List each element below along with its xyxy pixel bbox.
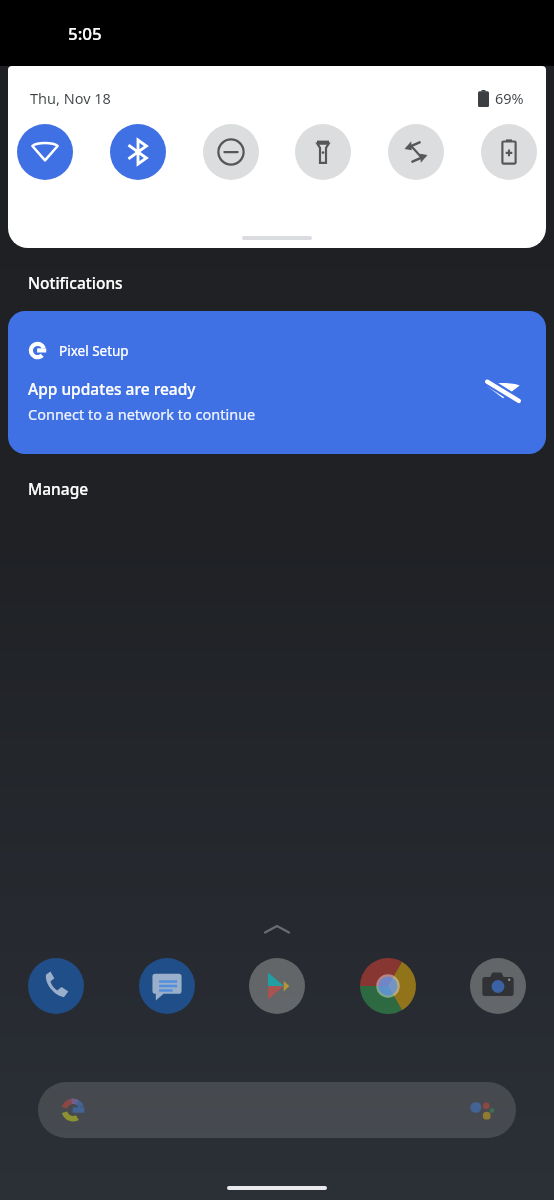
staticText: 69%: [495, 88, 524, 108]
button[interactable]: Manage: [28, 478, 89, 499]
button[interactable]: Camera: [470, 958, 526, 1014]
button[interactable]: Auto rotate: [388, 124, 444, 180]
button[interactable]: Wi-Fi: [17, 124, 73, 180]
staticText: Pixel Setup: [59, 342, 129, 360]
button[interactable]: Play Store: [249, 958, 305, 1014]
button[interactable]: Battery Saver: [481, 124, 537, 180]
staticText: 5:05: [68, 22, 102, 45]
button[interactable]: Bluetooth: [110, 124, 166, 180]
staticText: App updates are ready: [28, 378, 196, 399]
button[interactable]: Phone: [28, 958, 84, 1014]
staticText: Connect to a network to continue: [28, 404, 256, 424]
button[interactable]: Do Not Disturb: [203, 124, 259, 180]
button[interactable]: Google Search: [38, 1082, 516, 1138]
staticText: Thu, Nov 18: [30, 88, 111, 108]
button[interactable]: Messages: [139, 958, 195, 1014]
staticText: Notifications: [28, 272, 123, 293]
button[interactable]: Flashlight: [295, 124, 351, 180]
button[interactable]: [242, 236, 312, 240]
button[interactable]: Pixel Setup: [8, 311, 546, 454]
button[interactable]: Chrome: [360, 958, 416, 1014]
